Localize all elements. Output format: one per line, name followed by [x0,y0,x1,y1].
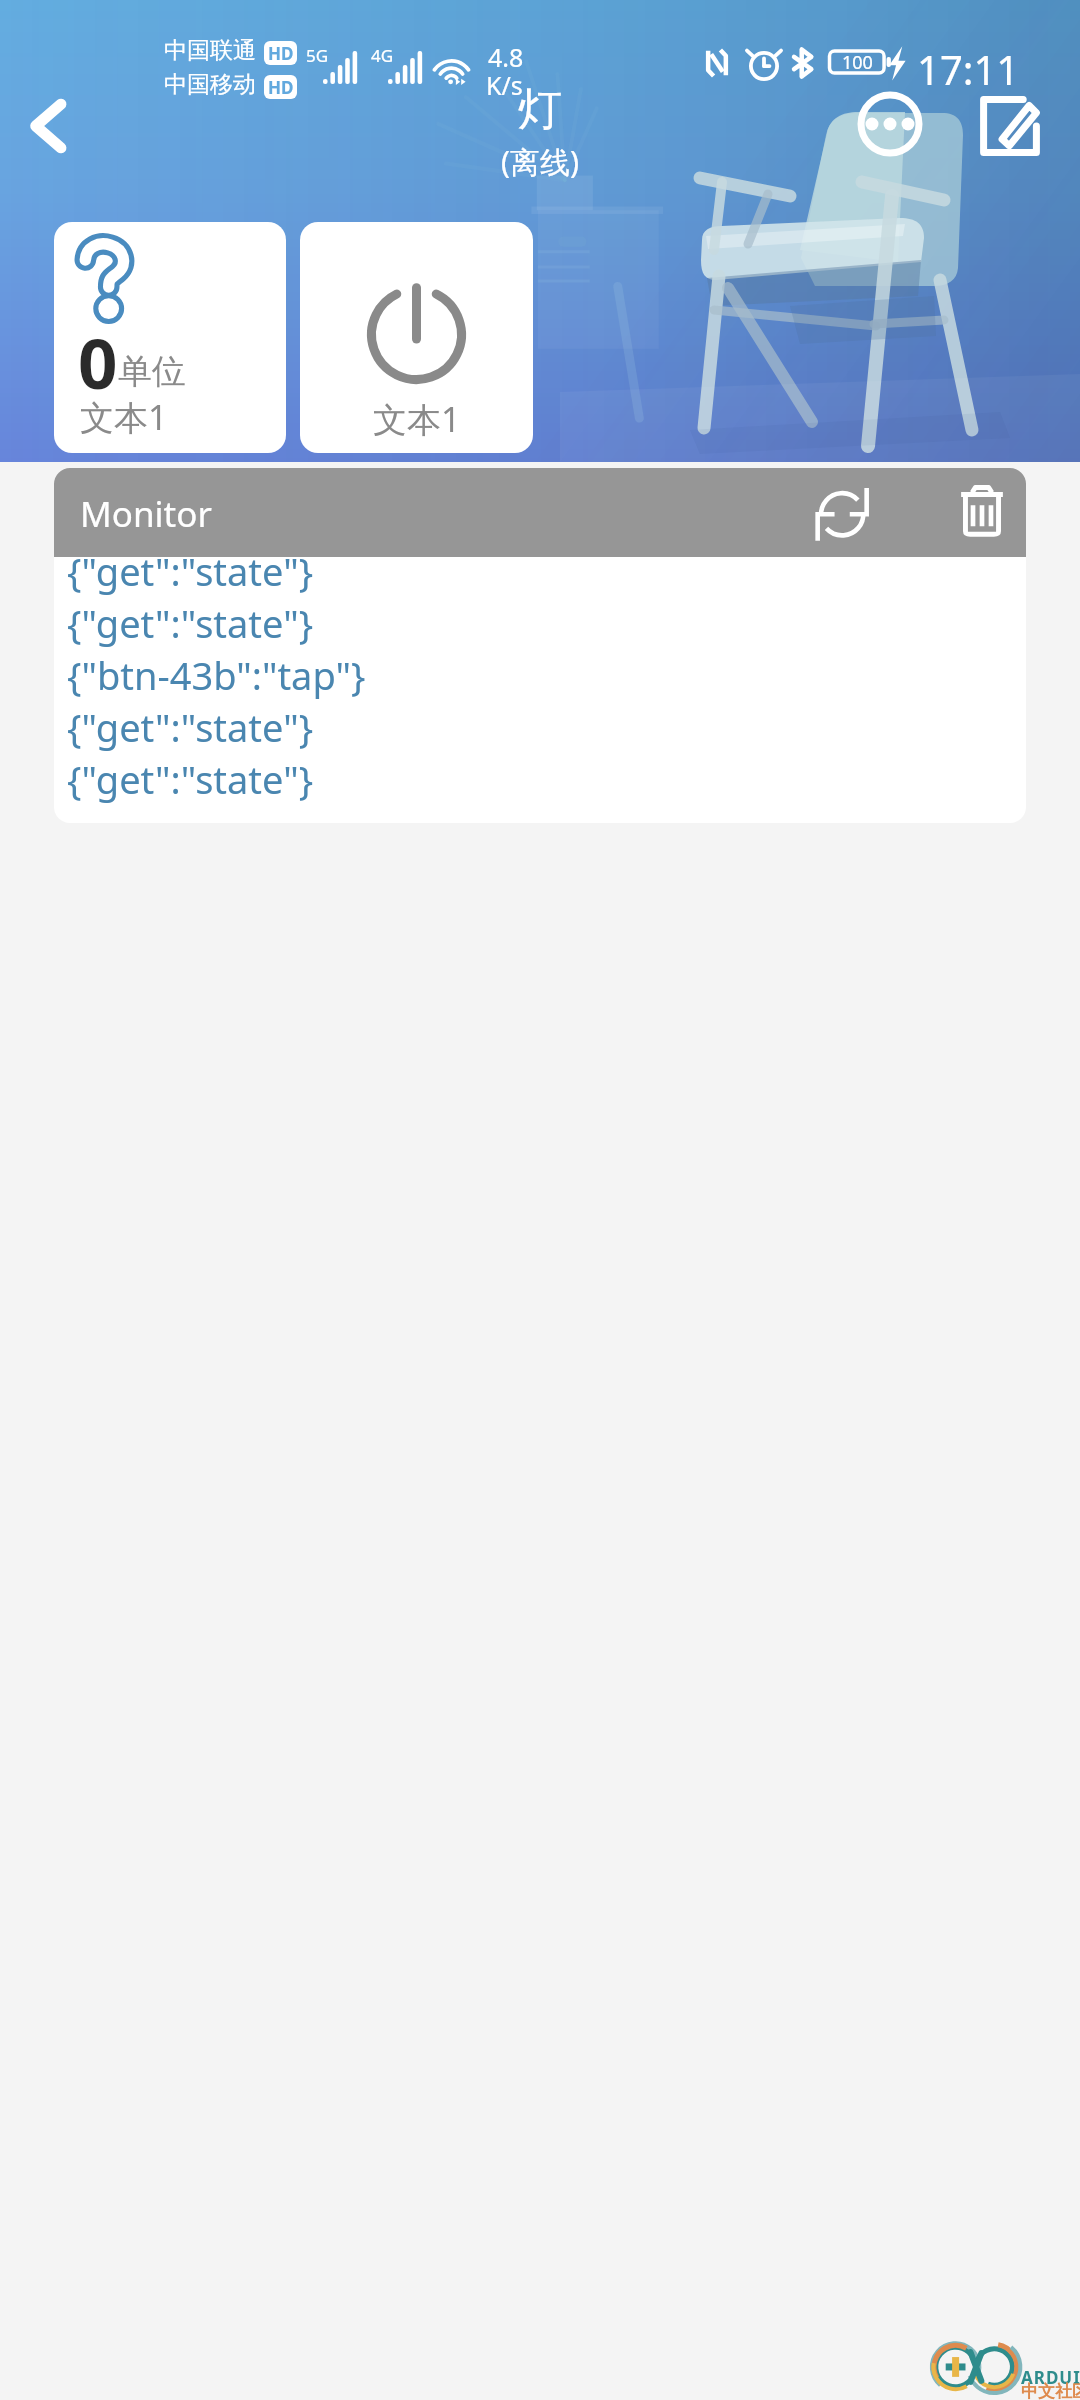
button[interactable]: Back [8,84,92,168]
staticText: 文本1 [373,396,461,442]
staticText: 中国联通 [164,36,256,65]
staticText: 单位 [118,350,186,393]
staticText: (离线) [501,141,579,182]
button[interactable]: Edit [977,93,1043,159]
staticText: 4.8 [488,40,524,74]
staticText: HD [268,42,294,65]
button[interactable]: Refresh [814,481,878,545]
button[interactable]: More options [857,91,923,157]
button[interactable]: 文本1 [300,222,533,453]
staticText: 灯 [518,82,562,137]
staticText: 17:11 [917,42,1020,96]
staticText: K/s [486,68,523,102]
staticText: 5G [306,44,329,67]
staticText: {"btn-43b":"tap"} [67,649,366,701]
staticText: 中国移动 [164,70,256,99]
staticText: {"get":"state"} [67,597,314,649]
staticText: Monitor [80,490,212,538]
staticText: 中文社区 [1021,2381,1080,2400]
button[interactable]: Clear [953,482,1011,540]
button[interactable]: 0 [54,222,286,453]
staticText: ARDUINO [1021,2366,1080,2389]
staticText: {"get":"state"} [67,545,314,597]
staticText: HD [268,76,294,99]
staticText: 100 [842,50,873,75]
staticText: 文本1 [80,394,168,440]
staticText: 4G [371,44,394,67]
staticText: {"get":"state"} [67,753,314,805]
staticText: {"get":"state"} [67,701,314,753]
staticText: 0 [78,315,118,409]
